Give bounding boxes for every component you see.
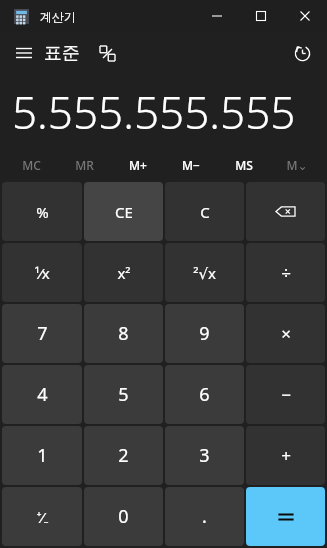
staticText: . — [202, 504, 207, 529]
button[interactable]: ⁺⁄₋ — [2, 487, 82, 546]
button[interactable]: MR — [58, 150, 111, 180]
staticText: MS — [235, 157, 253, 173]
button[interactable]: + — [246, 426, 325, 485]
button[interactable]: 5 — [84, 365, 163, 424]
staticText: M+ — [129, 157, 147, 173]
button[interactable]: 7 — [2, 304, 82, 363]
button[interactable]: 0 — [84, 487, 163, 546]
staticText: ⁺⁄₋ — [36, 507, 49, 527]
button[interactable]: MS — [217, 150, 270, 180]
button[interactable]: 3 — [165, 426, 244, 485]
button[interactable]: Minimize — [195, 0, 239, 32]
staticText: 계산기 — [40, 9, 76, 24]
button[interactable]: ²√x — [165, 243, 244, 302]
staticText: 5.555.555.555 — [12, 82, 296, 142]
staticText: ÷ — [281, 261, 291, 284]
staticText: ¹⁄x — [34, 263, 50, 283]
button[interactable]: × — [246, 304, 325, 363]
staticText: CE — [115, 202, 133, 222]
button[interactable]: x² — [84, 243, 163, 302]
button[interactable]: . — [165, 487, 244, 546]
staticText: 4 — [37, 382, 48, 407]
button[interactable]: Backspace — [246, 182, 325, 241]
staticText: % — [36, 202, 49, 222]
button[interactable]: ÷ — [246, 243, 325, 302]
staticText: 1 — [37, 443, 48, 468]
staticText: + — [281, 444, 291, 467]
button[interactable]: Close — [283, 0, 327, 32]
button[interactable]: CE — [84, 182, 163, 241]
staticText: 2 — [118, 443, 129, 468]
staticText: 3 — [199, 443, 210, 468]
button[interactable]: M⌄ — [270, 150, 323, 180]
button[interactable]: 8 — [84, 304, 163, 363]
staticText: 0 — [118, 504, 129, 529]
button[interactable]: Keep on top — [92, 38, 122, 68]
staticText: 8 — [118, 321, 129, 346]
button[interactable]: 4 — [2, 365, 82, 424]
button[interactable]: Menu — [8, 37, 40, 69]
button[interactable]: C — [165, 182, 244, 241]
button[interactable]: 6 — [165, 365, 244, 424]
button[interactable]: 2 — [84, 426, 163, 485]
staticText: MC — [22, 157, 41, 173]
button[interactable]: History — [285, 36, 319, 70]
button[interactable]: Maximize — [239, 0, 283, 32]
staticText: 6 — [199, 382, 210, 407]
staticText: ²√x — [193, 263, 216, 283]
staticText: − — [281, 383, 291, 406]
button[interactable]: M− — [164, 150, 217, 180]
button[interactable]: 9 — [165, 304, 244, 363]
button[interactable]: ¹⁄x — [2, 243, 82, 302]
button[interactable] — [246, 487, 325, 546]
staticText: C — [200, 202, 210, 222]
button[interactable]: 1 — [2, 426, 82, 485]
staticText: 9 — [199, 321, 210, 346]
button[interactable]: M+ — [111, 150, 164, 180]
staticText: x² — [117, 263, 131, 283]
button[interactable]: % — [2, 182, 82, 241]
staticText: MR — [75, 157, 94, 173]
staticText: × — [281, 322, 291, 345]
staticText: 7 — [37, 321, 48, 346]
button[interactable]: MC — [4, 150, 58, 180]
staticText: M− — [182, 157, 200, 173]
staticText: 5 — [118, 382, 129, 407]
staticText: 표준 — [44, 42, 80, 65]
staticText: M⌄ — [286, 157, 308, 173]
button[interactable]: − — [246, 365, 325, 424]
